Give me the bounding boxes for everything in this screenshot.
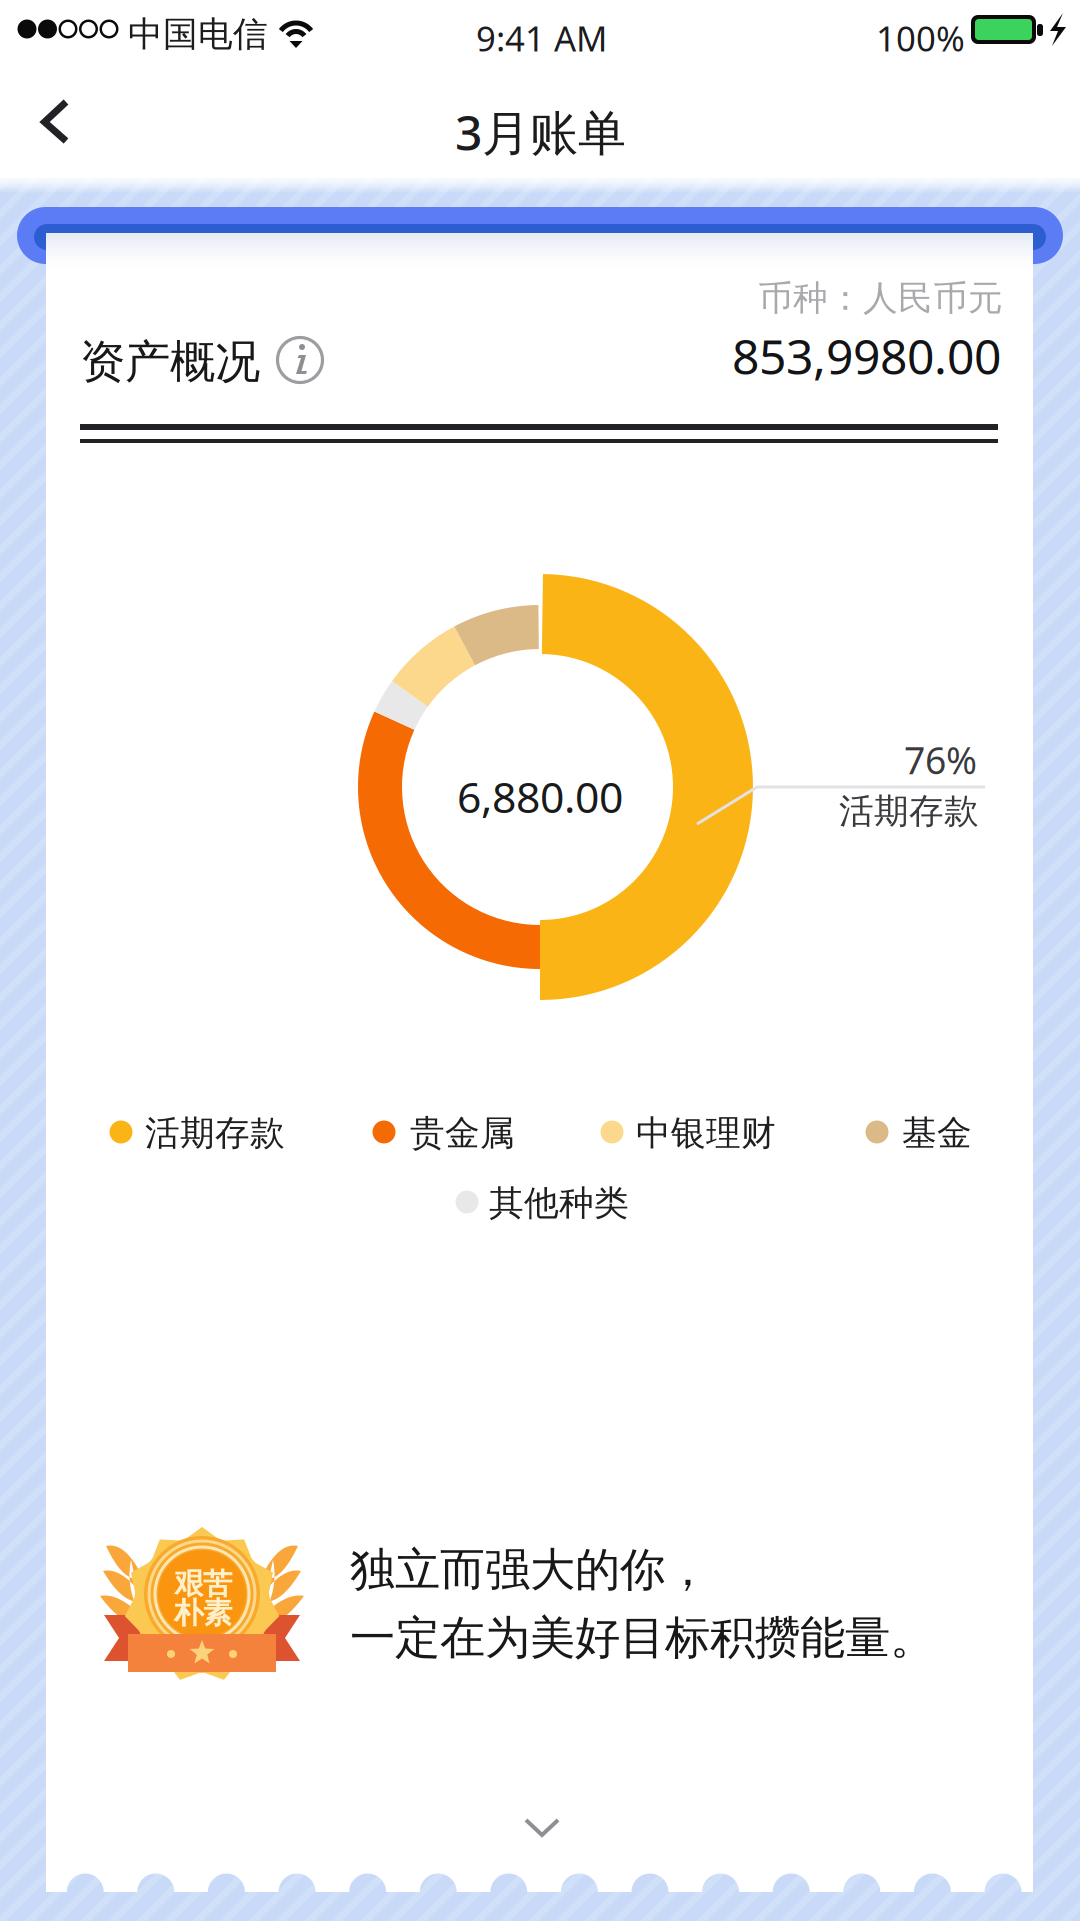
staticText: 中国电信 (128, 13, 268, 56)
staticText: 853,9980.00 (732, 324, 1001, 388)
staticText: 活期存款 (145, 1112, 285, 1155)
staticText: 一定在为美好目标积攒能量。 (350, 1610, 935, 1666)
staticText: 贵金属 (410, 1112, 515, 1155)
staticText: 朴素 (174, 1595, 232, 1631)
staticText: 9:41 AM (476, 15, 607, 61)
staticText: 中银理财 (636, 1112, 776, 1155)
staticText: 活期存款 (839, 790, 979, 833)
staticText: 基金 (902, 1112, 972, 1155)
staticText: 其他种类 (489, 1182, 629, 1225)
staticText: 100% (876, 15, 965, 61)
staticText: 3月账单 (455, 100, 626, 164)
staticText: 艰苦 (174, 1566, 232, 1602)
staticText: 独立而强大的你， (350, 1542, 710, 1598)
staticText: 币种：人民币元 (758, 277, 1003, 320)
staticText: 资产概况 (80, 334, 260, 390)
button[interactable]: Expand (0, 0, 1080, 1921)
button[interactable]: Asset overview info (0, 0, 1080, 1921)
staticText: 6,880.00 (457, 768, 623, 825)
button[interactable]: Back (0, 0, 1080, 1921)
staticText: 76% (904, 735, 977, 785)
